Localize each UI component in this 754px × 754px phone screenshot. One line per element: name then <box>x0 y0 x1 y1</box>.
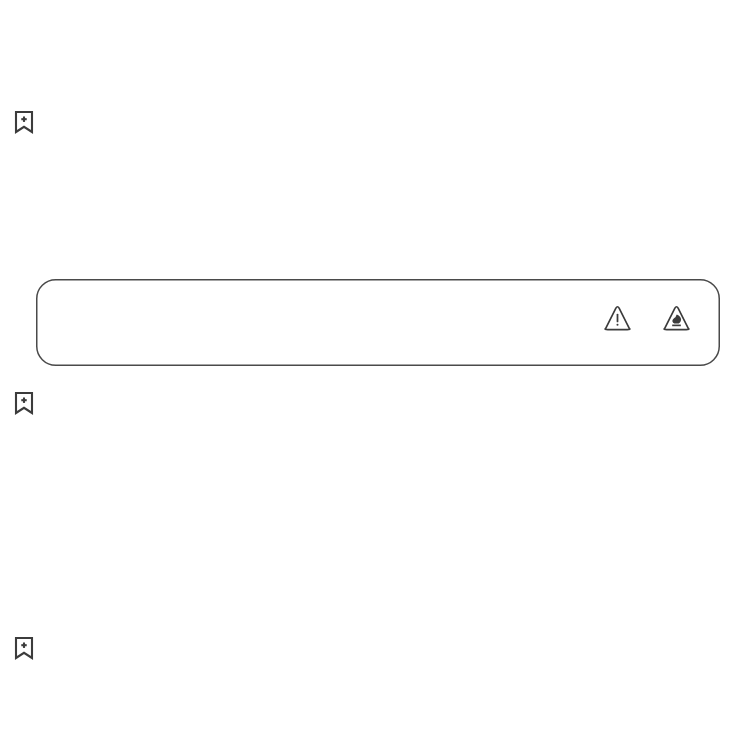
button[interactable]: Bookmark <box>16 112 32 132</box>
button[interactable]: Bookmark <box>16 638 32 658</box>
button[interactable]: Flammable hazard <box>663 304 690 331</box>
button[interactable]: Bookmark <box>16 393 32 413</box>
button[interactable]: Warning <box>604 304 631 331</box>
button[interactable]: Warning <box>36 279 720 366</box>
